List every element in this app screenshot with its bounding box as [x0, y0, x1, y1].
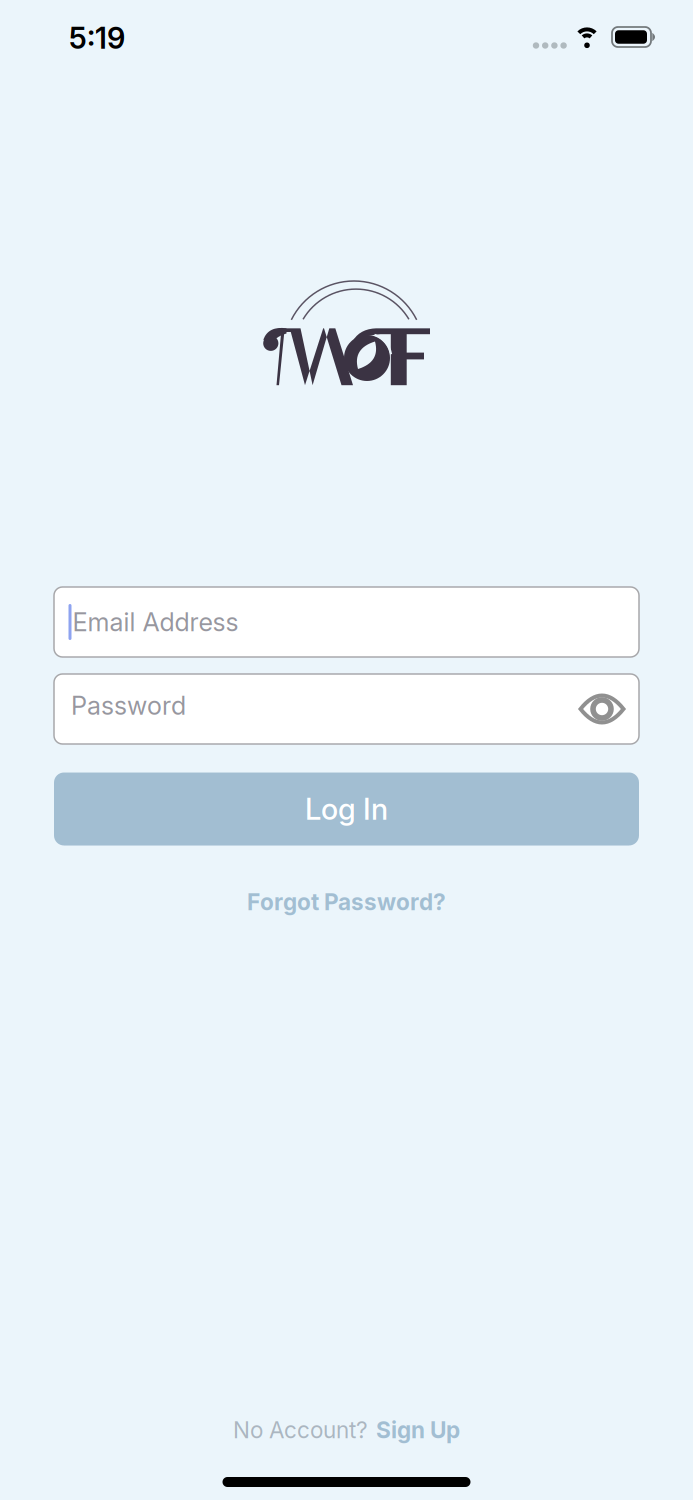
staticText: Sign Up	[376, 1417, 460, 1443]
button[interactable]: Log In	[54, 772, 639, 845]
staticText: No Account?	[233, 1417, 368, 1443]
staticText: Forgot Password?	[247, 889, 446, 915]
button[interactable]: Sign Up	[376, 1417, 460, 1443]
staticText: Email Address	[72, 607, 238, 637]
button[interactable]: Password	[54, 674, 639, 744]
button[interactable]: Show password	[579, 692, 625, 726]
staticText: Log In	[305, 792, 388, 826]
button[interactable]: Forgot Password?	[247, 889, 446, 915]
staticText: 5:19	[69, 21, 125, 55]
staticText: Password	[71, 691, 186, 720]
button[interactable]: Email Address	[54, 587, 639, 657]
